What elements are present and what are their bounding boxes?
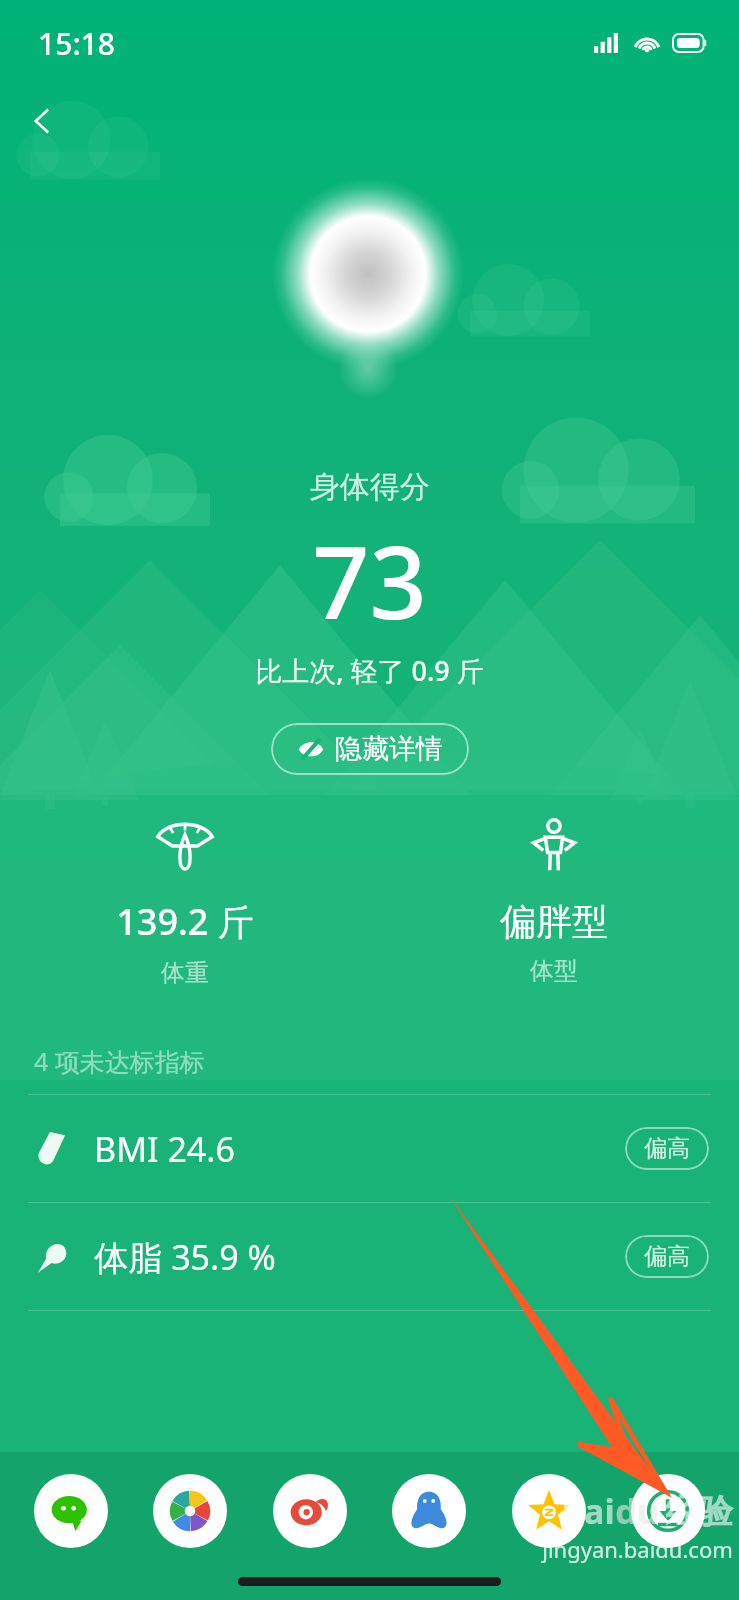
button[interactable]: 偏高 — [625, 1127, 709, 1170]
staticText: du — [615, 1488, 659, 1534]
staticText: 4 项未达标指标 — [34, 1044, 739, 1078]
button[interactable]: Back — [14, 92, 72, 150]
button[interactable]: Weibo — [273, 1474, 347, 1548]
staticText: 偏高 — [644, 1134, 690, 1163]
staticText: 139.2 斤 — [116, 897, 254, 946]
staticText: 体重 — [161, 958, 209, 988]
button[interactable]: 偏胖型 — [369, 815, 739, 990]
button[interactable]: 139.2 斤 — [0, 815, 369, 992]
staticText: BMI 24.6 — [94, 1126, 235, 1172]
staticText: jingyan.baidu.com — [542, 1534, 733, 1564]
staticText: 经验 — [665, 1490, 733, 1533]
staticText: 体型 — [530, 956, 578, 986]
button[interactable]: 体脂 35.9 % — [0, 1203, 739, 1310]
button[interactable]: 隐藏详情 — [271, 723, 469, 775]
staticText: 比上次, 轻了 0.9 斤 — [255, 652, 484, 689]
staticText: 身体得分 — [310, 468, 430, 506]
staticText: 偏胖型 — [500, 899, 608, 944]
staticText: Bai — [561, 1488, 615, 1534]
staticText: 隐藏详情 — [335, 732, 443, 766]
button[interactable]: 偏高 — [625, 1235, 709, 1278]
staticText: 73 — [312, 512, 427, 648]
staticText: 偏高 — [644, 1242, 690, 1271]
button[interactable]: QZone — [512, 1474, 586, 1548]
staticText: 体脂 35.9 % — [94, 1234, 276, 1280]
button[interactable]: BMI 24.6 — [0, 1095, 739, 1202]
button[interactable]: QQ — [392, 1474, 466, 1548]
staticText: 15:18 — [38, 23, 115, 64]
button[interactable]: WeChat — [34, 1474, 108, 1548]
button[interactable]: Moments — [153, 1474, 227, 1548]
button[interactable]: Download — [631, 1474, 705, 1548]
